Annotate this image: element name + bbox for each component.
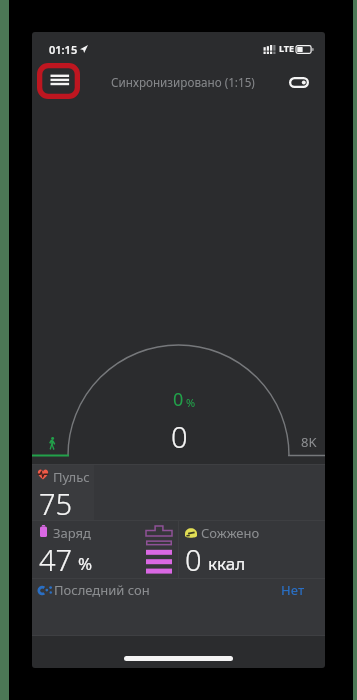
staticText: Последний сон <box>54 581 150 599</box>
button[interactable]: Пульс <box>32 465 325 520</box>
staticText: 0 <box>173 387 184 412</box>
staticText: LTE <box>279 42 295 54</box>
staticText: Заряд <box>53 524 91 542</box>
button[interactable]: Последний сон <box>32 579 325 635</box>
button[interactable]: Заряд <box>32 521 178 578</box>
staticText: % <box>186 395 196 410</box>
staticText: 75 <box>39 484 73 523</box>
button[interactable]: Menu <box>37 63 80 99</box>
staticText: ккал <box>208 552 246 575</box>
staticText: 8K <box>301 433 317 451</box>
staticText: Сожжено <box>201 524 260 542</box>
button[interactable]: Сожжено <box>179 521 240 578</box>
staticText: % <box>78 552 93 575</box>
staticText: 01:15 <box>49 42 78 57</box>
staticText: Пульс <box>53 468 90 486</box>
staticText: Синхронизировано (1:15) <box>111 74 255 90</box>
staticText: 0 <box>171 417 188 456</box>
button[interactable]: Toggle device <box>282 70 316 94</box>
staticText: 0 <box>185 540 202 579</box>
staticText: Нет <box>281 581 305 599</box>
staticText: 47 <box>39 540 73 579</box>
